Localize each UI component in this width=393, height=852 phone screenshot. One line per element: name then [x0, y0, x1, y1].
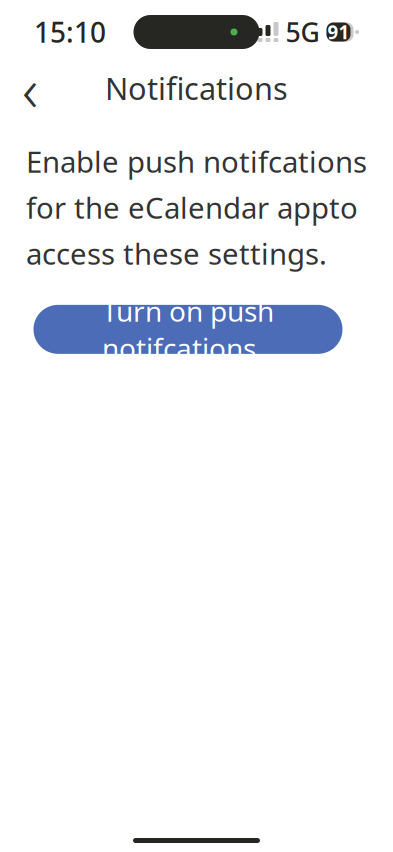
staticText: Turn on push notifcations: [102, 292, 274, 367]
staticText: ‹: [22, 47, 38, 129]
staticText: 5G: [285, 14, 319, 50]
button[interactable]: Turn on push notifcations: [33, 305, 342, 354]
button[interactable]: Back: [8, 66, 52, 110]
staticText: Enable push notifcations for the eCalend…: [26, 142, 367, 273]
staticText: Notifications: [105, 68, 288, 108]
staticText: 91: [327, 20, 349, 44]
staticText: 15:10: [34, 13, 106, 51]
